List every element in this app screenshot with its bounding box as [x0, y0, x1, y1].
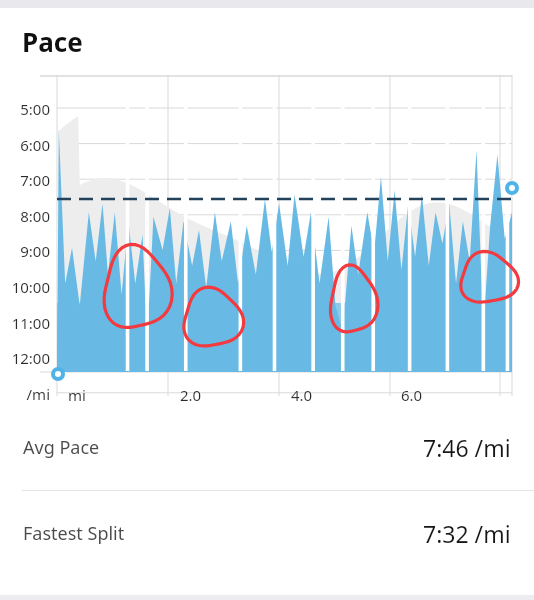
staticText: 2.0 [180, 385, 202, 405]
staticText: 12:00 [4, 348, 50, 368]
button[interactable]: Avg Pace [0, 405, 534, 490]
staticText: mi [68, 385, 86, 405]
staticText: 4.0 [291, 385, 313, 405]
staticText: 10:00 [4, 277, 50, 297]
staticText: Fastest Split [23, 521, 125, 546]
staticText: 7:00 [4, 170, 50, 190]
staticText: 9:00 [4, 241, 50, 261]
staticText: 7:32 /mi [423, 518, 511, 549]
staticText: 8:00 [4, 206, 50, 226]
button[interactable]: Fastest Split [0, 491, 534, 576]
staticText: 7:46 /mi [423, 432, 511, 463]
staticText: Pace [22, 24, 83, 59]
staticText: /mi [4, 384, 50, 404]
staticText: 6:00 [4, 135, 50, 155]
staticText: 5:00 [4, 99, 50, 119]
staticText: 11:00 [4, 313, 50, 333]
staticText: 6.0 [401, 385, 423, 405]
staticText: Avg Pace [23, 435, 100, 460]
